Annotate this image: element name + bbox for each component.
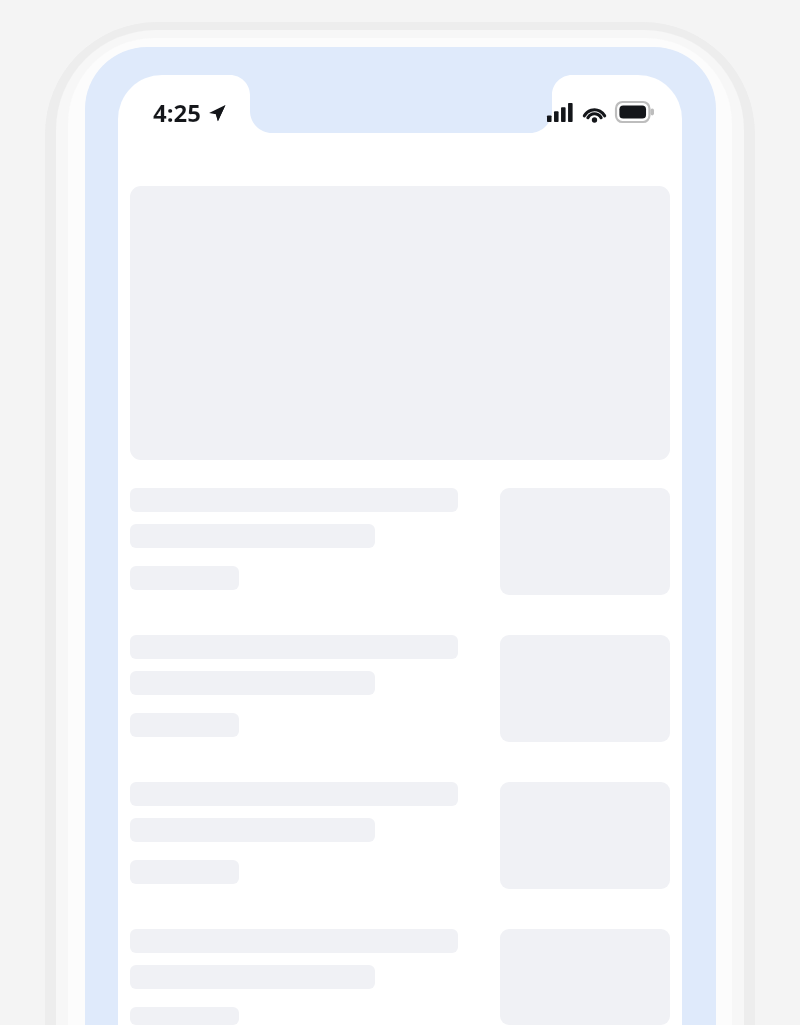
button[interactable]: List item bbox=[130, 782, 670, 889]
staticText: 4:25 bbox=[153, 96, 201, 129]
button[interactable]: List item bbox=[130, 635, 670, 742]
button[interactable]: List item bbox=[130, 488, 670, 595]
button[interactable]: List item bbox=[130, 929, 670, 1025]
